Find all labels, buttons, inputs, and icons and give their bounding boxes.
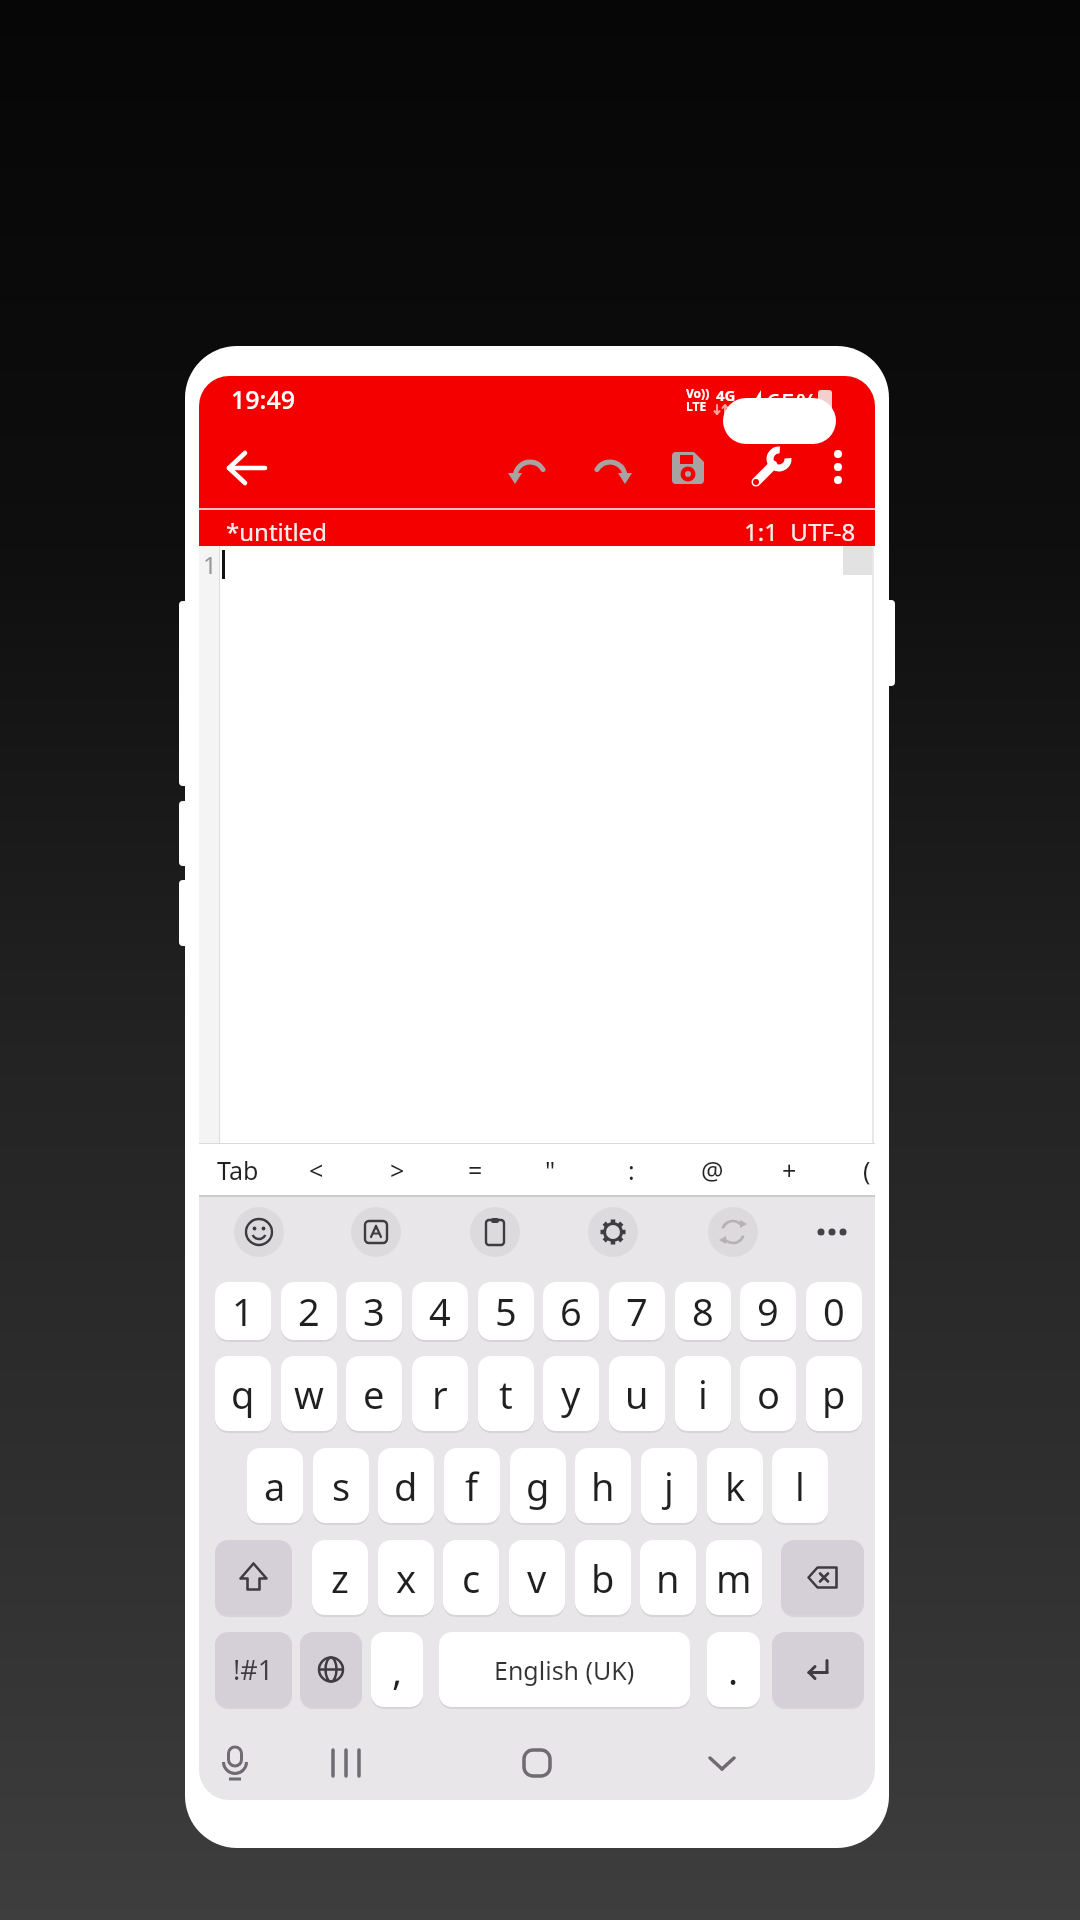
button[interactable]: " [530,1147,570,1193]
button[interactable] [708,1207,758,1257]
staticText: LTE [686,398,707,414]
button[interactable]: u [609,1356,665,1431]
button[interactable]: c [443,1540,499,1615]
button[interactable]: 8 [675,1282,731,1340]
button[interactable]: Tab [207,1147,269,1193]
button[interactable] [322,1739,370,1787]
button[interactable]: . [707,1632,760,1707]
button[interactable]: m [706,1540,762,1615]
button[interactable]: s [313,1448,369,1523]
staticText: < [309,1153,324,1187]
button[interactable]: w [281,1356,337,1431]
button[interactable] [215,1540,292,1615]
staticText: : [628,1153,635,1187]
button[interactable]: e [346,1356,402,1431]
staticText: 1 [203,548,217,581]
button[interactable] [351,1207,401,1257]
staticText: x [396,1552,417,1604]
button[interactable] [588,1207,638,1257]
button[interactable]: 9 [740,1282,796,1340]
button[interactable] [588,447,632,491]
staticText: , [392,1644,403,1696]
button[interactable]: k [707,1448,763,1523]
button[interactable]: q [215,1356,271,1431]
button[interactable]: z [312,1540,368,1615]
button[interactable]: x [378,1540,434,1615]
button[interactable]: + [769,1147,809,1193]
staticText: w [294,1368,324,1420]
button[interactable]: 2 [281,1282,337,1340]
button[interactable]: : [611,1147,651,1193]
staticText: z [331,1552,349,1604]
staticText: 6 [560,1285,582,1337]
button[interactable]: 0 [806,1282,862,1340]
button[interactable]: , [371,1632,423,1707]
button[interactable]: 4 [412,1282,468,1340]
button[interactable] [470,1207,520,1257]
button[interactable] [772,1632,864,1707]
staticText: c [462,1552,481,1604]
button[interactable]: 1 [215,1282,271,1340]
button[interactable]: = [455,1147,495,1193]
staticText: *untitled [226,515,327,548]
staticText: s [332,1460,351,1512]
button[interactable] [781,1540,864,1615]
button[interactable]: 6 [543,1282,599,1340]
staticText: m [716,1552,752,1604]
button[interactable]: ( [847,1147,875,1193]
button[interactable]: d [378,1448,434,1523]
button[interactable] [300,1632,362,1707]
staticText: 9 [757,1285,779,1337]
button[interactable]: v [509,1540,565,1615]
staticText: 65% [766,384,818,419]
button[interactable] [698,1739,746,1787]
button[interactable]: p [806,1356,862,1431]
button[interactable]: h [575,1448,631,1523]
staticText: English (UK) [494,1653,635,1687]
button[interactable] [747,447,791,491]
button[interactable] [812,1222,852,1242]
button[interactable]: g [510,1448,566,1523]
button[interactable] [666,446,710,490]
staticText: r [432,1368,448,1420]
button[interactable]: j [641,1448,697,1523]
button[interactable] [508,447,552,491]
button[interactable]: > [377,1147,417,1193]
button[interactable]: 5 [478,1282,534,1340]
staticText: q [231,1368,255,1420]
staticText: b [591,1552,615,1604]
button[interactable] [513,1739,561,1787]
button[interactable]: o [740,1356,796,1431]
staticText: " [545,1153,556,1187]
button[interactable]: English (UK) [439,1632,690,1707]
button[interactable]: n [640,1540,696,1615]
staticText: i [698,1368,708,1420]
button[interactable] [816,448,860,492]
button[interactable]: y [543,1356,599,1431]
button[interactable]: l [772,1448,828,1523]
button[interactable]: b [575,1540,631,1615]
button[interactable]: t [478,1356,534,1431]
button[interactable]: a [247,1448,303,1523]
button[interactable] [211,1739,259,1787]
button[interactable]: f [444,1448,500,1523]
button[interactable]: 3 [346,1282,402,1340]
button[interactable] [225,446,269,490]
button[interactable]: @ [692,1147,732,1193]
staticText: y [561,1368,581,1420]
button[interactable]: 7 [609,1282,665,1340]
button[interactable]: !#1 [215,1632,292,1707]
staticText: 8 [692,1285,714,1337]
staticText: p [822,1368,846,1420]
button[interactable]: i [675,1356,731,1431]
button[interactable] [234,1207,284,1257]
staticText: @ [701,1153,724,1187]
staticText: 5 [495,1285,517,1337]
staticText: d [394,1460,418,1512]
button[interactable]: r [412,1356,468,1431]
button[interactable]: < [296,1147,336,1193]
staticText: l [795,1460,805,1512]
staticText: 2 [298,1285,320,1337]
staticText: Vo)) [686,385,710,401]
staticText: Tab [217,1153,259,1187]
